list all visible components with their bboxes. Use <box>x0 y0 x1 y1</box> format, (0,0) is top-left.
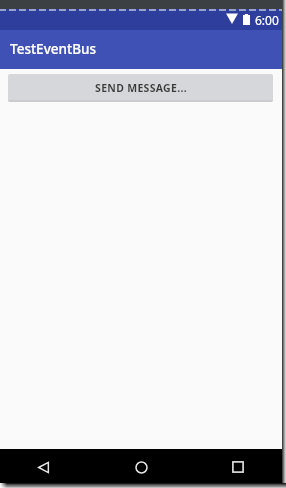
button[interactable]: Home <box>121 450 161 484</box>
button[interactable]: SEND MESSAGE... <box>8 74 273 102</box>
button[interactable]: Recent apps <box>219 450 257 484</box>
button[interactable]: Back <box>23 450 63 484</box>
staticText: TestEventBus <box>10 40 96 58</box>
staticText: 6:00 <box>255 12 279 28</box>
staticText: SEND MESSAGE... <box>95 81 187 95</box>
